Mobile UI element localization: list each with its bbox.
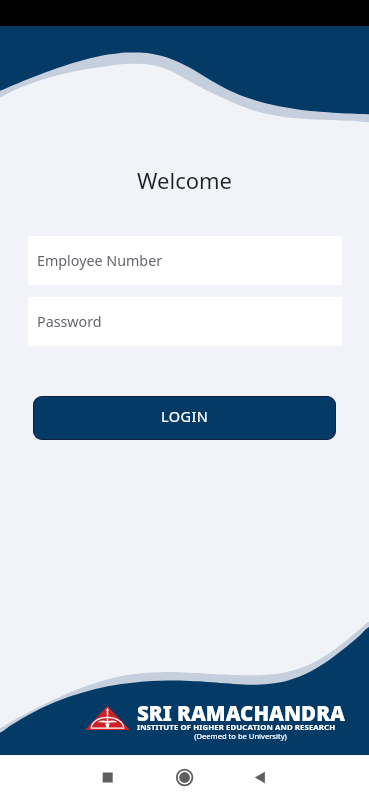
other: Sri Ramachandra logo	[85, 706, 130, 730]
button[interactable]: Password	[28, 297, 342, 346]
staticText: Password	[37, 312, 102, 331]
button[interactable]: Employee Number	[28, 236, 342, 285]
staticText: INSTITUTE OF HIGHER EDUCATION AND RESEAR…	[137, 722, 336, 733]
staticText: LOGIN	[161, 406, 209, 426]
button[interactable]: LOGIN	[33, 396, 336, 440]
staticText: Welcome	[0, 165, 369, 195]
staticText: Employee Number	[37, 251, 163, 270]
staticText: (Deemed to be University)	[140, 731, 341, 741]
staticText: SRI RAMACHANDRA	[137, 699, 345, 727]
